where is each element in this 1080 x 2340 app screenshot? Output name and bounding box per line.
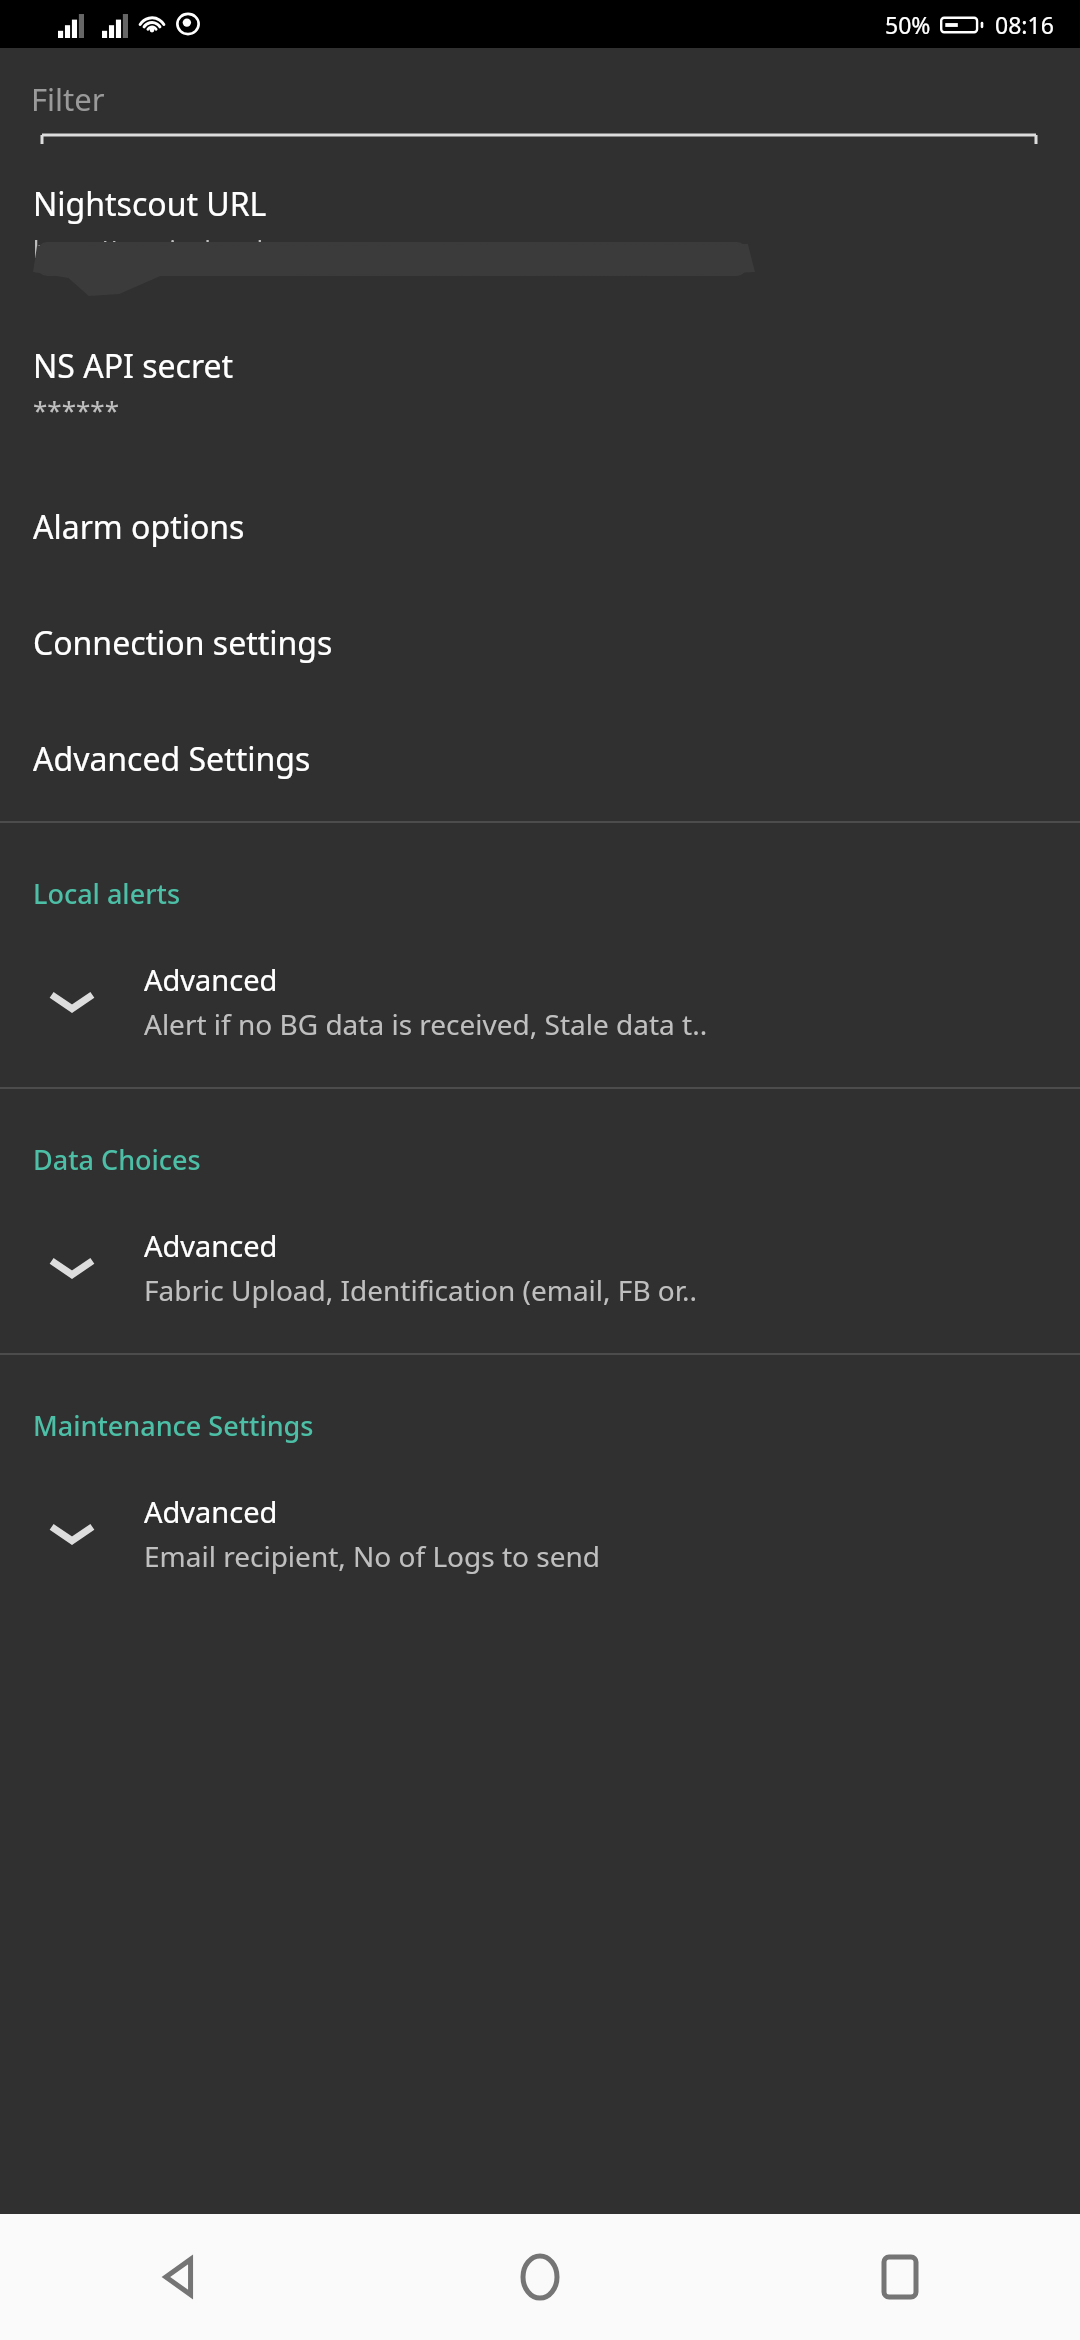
staticText: 50% [885,9,931,40]
staticText: ****** [33,392,119,427]
staticText: Advanced Settings [33,737,311,781]
button[interactable]: Expand Data Choices [0,1226,1080,1353]
button[interactable]: NS API secret [0,344,1080,427]
button[interactable]: Back [0,2214,360,2340]
staticText: Data Choices [33,1141,201,1178]
button[interactable]: Advanced Settings [0,737,1080,781]
staticText: https://my-site.herokuapp.com [33,232,383,265]
staticText: Connection settings [33,621,333,665]
other: Expand Maintenance Settings [0,1521,144,1547]
staticText: Maintenance Settings [33,1407,314,1444]
button[interactable]: Connection settings [0,621,1080,665]
button[interactable]: Alarm options [0,505,1080,549]
other: Expand Local alerts [0,989,144,1015]
staticText: Advanced [144,1226,278,1265]
other: Expand Data Choices [0,1255,144,1281]
staticText: NS API secret [33,344,234,388]
staticText: Nightscout URL [33,182,267,226]
button[interactable]: Expand Maintenance Settings [0,1492,1080,1619]
staticText: Local alerts [33,875,181,912]
staticText: Filter [31,78,105,120]
staticText: Advanced [144,1492,278,1531]
button[interactable]: Expand Local alerts [0,960,1080,1087]
staticText: 08:16 [995,9,1054,40]
staticText: Advanced [144,960,278,999]
staticText: Fabric Upload, Identification (email, FB… [144,1271,697,1309]
button[interactable]: Recent apps [720,2214,1080,2340]
button[interactable]: Home [360,2214,720,2340]
staticText: Email recipient, No of Logs to send [144,1537,601,1575]
staticText: Alert if no BG data is received, Stale d… [144,1005,708,1043]
button[interactable]: Filter [0,78,1080,144]
button[interactable]: Nightscout URL [0,182,1080,292]
staticText: Alarm options [33,505,245,549]
